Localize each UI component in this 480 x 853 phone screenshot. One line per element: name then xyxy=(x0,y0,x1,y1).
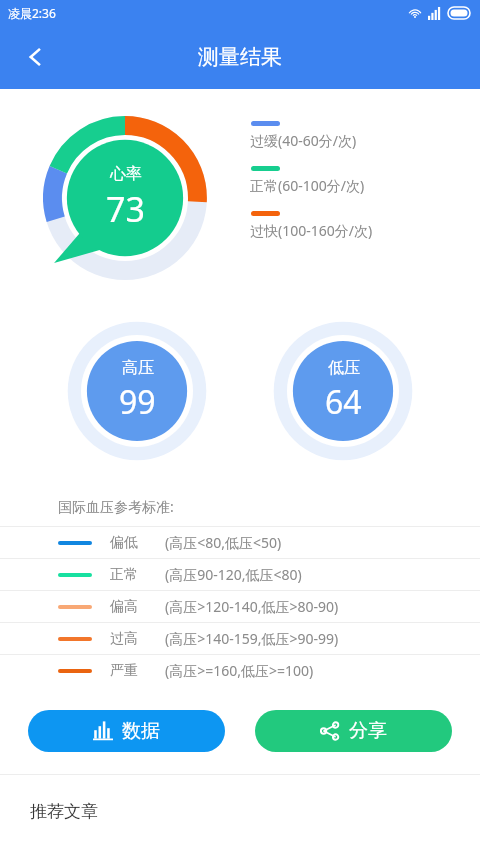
button[interactable]: 严重 xyxy=(0,655,480,686)
button[interactable]: 偏低 xyxy=(0,527,480,558)
staticText: (高压>=160,低压>=100) xyxy=(165,661,314,680)
staticText: 心率 xyxy=(110,164,142,184)
button[interactable]: 偏高 xyxy=(0,591,480,622)
button[interactable]: 高压 xyxy=(67,321,207,461)
staticText: 严重 xyxy=(110,662,138,680)
staticText: 分享 xyxy=(349,719,387,743)
staticText: 国际血压参考标准: xyxy=(58,497,174,516)
button[interactable]: 正常 xyxy=(0,559,480,590)
button[interactable]: Back xyxy=(12,33,60,81)
button[interactable]: 过高 xyxy=(0,623,480,654)
staticText: 99 xyxy=(119,380,156,424)
staticText: 过缓(40-60分/次) xyxy=(250,131,357,150)
staticText: (高压90-120,低压<80) xyxy=(165,565,302,584)
button[interactable]: 低压 xyxy=(273,321,413,461)
staticText: 偏高 xyxy=(110,598,138,616)
staticText: 数据 xyxy=(122,719,160,743)
staticText: 测量结果 xyxy=(198,44,282,70)
staticText: 正常(60-100分/次) xyxy=(250,176,365,195)
staticText: 推荐文章 xyxy=(30,801,98,822)
staticText: 低压 xyxy=(328,358,360,378)
button[interactable]: 分享 xyxy=(255,710,452,752)
staticText: 凌晨2:36 xyxy=(8,5,56,21)
staticText: 正常 xyxy=(110,566,138,584)
staticText: 偏低 xyxy=(110,534,138,552)
staticText: (高压<80,低压<50) xyxy=(165,533,282,552)
staticText: (高压>140-159,低压>90-99) xyxy=(165,629,339,648)
staticText: 过快(100-160分/次) xyxy=(250,221,373,240)
button[interactable]: 数据 xyxy=(28,710,225,752)
staticText: 高压 xyxy=(122,358,154,378)
staticText: 73 xyxy=(106,186,145,232)
staticText: 64 xyxy=(325,380,362,424)
staticText: (高压>120-140,低压>80-90) xyxy=(165,597,339,616)
staticText: 过高 xyxy=(110,630,138,648)
